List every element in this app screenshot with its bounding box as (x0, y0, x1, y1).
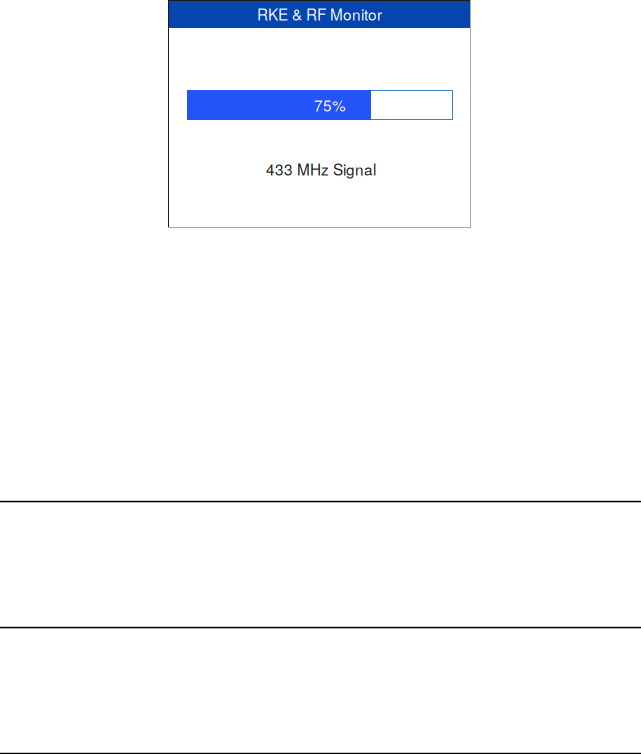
staticText: 75% (314, 94, 346, 116)
staticText: RKE & RF Monitor (257, 3, 382, 25)
button[interactable]: RKE & RF Monitor (168, 0, 471, 228)
staticText: 433 MHz Signal (266, 158, 376, 180)
